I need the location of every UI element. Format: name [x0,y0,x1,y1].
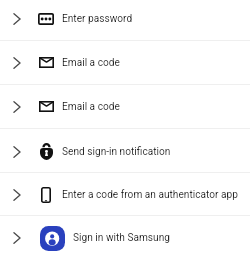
button[interactable]: Enter password [0,0,250,40]
staticText: Email a code [62,101,120,113]
staticText: Sign in with Samsung [73,232,170,244]
button[interactable]: Email a code [0,85,250,128]
staticText: Enter password [62,13,133,25]
button[interactable]: Sign in with Samsung [0,216,250,260]
button[interactable]: Email a code [0,41,250,84]
staticText: Send sign-in notification [62,146,171,158]
staticText: Email a code [62,57,120,69]
button[interactable]: Enter a code from an authenticator app [0,173,250,215]
button[interactable]: Send sign-in notification [0,129,250,172]
staticText: Enter a code from an authenticator app [62,189,238,201]
